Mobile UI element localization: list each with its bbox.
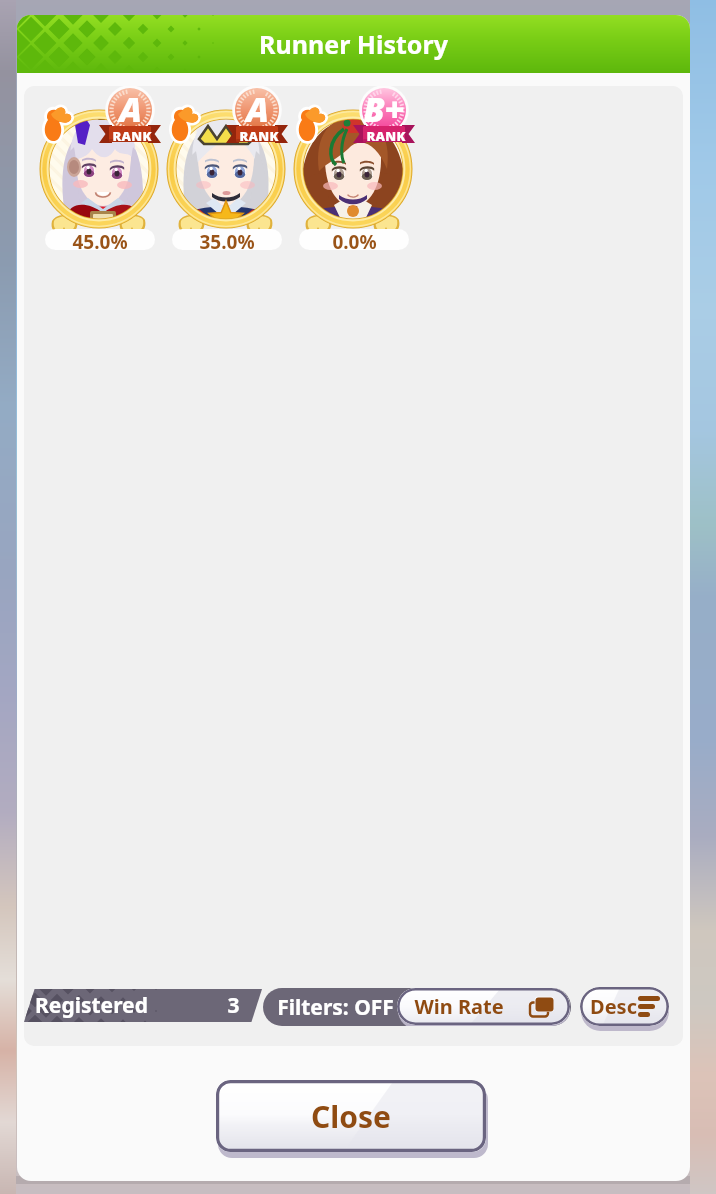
staticText: Close xyxy=(311,1096,391,1137)
staticText: B+ xyxy=(363,86,405,132)
staticText: 0.0% xyxy=(332,229,377,250)
staticText: A xyxy=(119,86,142,132)
staticText: A xyxy=(246,86,269,132)
staticText: 3 xyxy=(227,991,240,1020)
button[interactable]: Runner 45.0% win rate xyxy=(36,88,163,254)
button[interactable]: Desc xyxy=(580,987,669,1026)
staticText: 45.0% xyxy=(72,229,128,250)
button[interactable]: Registered xyxy=(24,989,262,1022)
staticText: RANK xyxy=(239,127,279,145)
staticText: Registered xyxy=(35,991,148,1020)
button[interactable]: Close xyxy=(216,1080,486,1152)
button[interactable]: Runner 35.0% win rate xyxy=(163,88,290,254)
staticText: RANK xyxy=(112,127,152,145)
staticText: Filters: OFF xyxy=(277,993,394,1022)
staticText: RANK xyxy=(366,127,406,145)
button[interactable]: Runner 0.0% win rate xyxy=(290,88,417,254)
staticText: 35.0% xyxy=(199,229,255,250)
button[interactable]: Win Rate xyxy=(397,988,570,1025)
button[interactable]: Filters: OFF xyxy=(263,988,397,1026)
staticText: Runner History xyxy=(259,27,448,61)
staticText: Win Rate xyxy=(414,993,504,1020)
staticText: Desc xyxy=(590,993,637,1020)
